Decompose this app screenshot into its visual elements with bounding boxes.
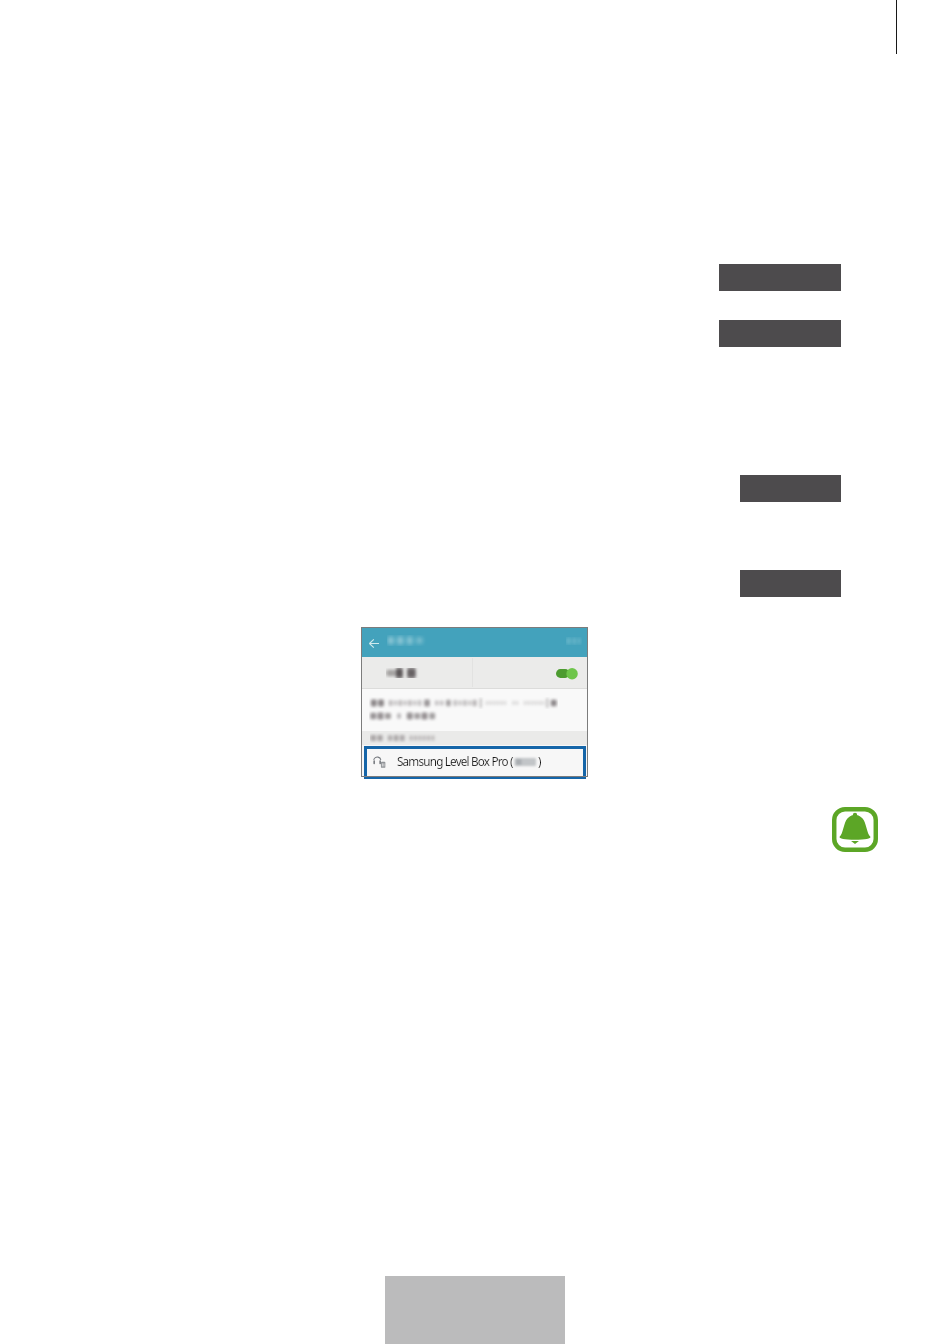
button[interactable]: Back bbox=[366, 635, 382, 651]
other: Bluetooth headset bbox=[373, 756, 386, 769]
button[interactable]: Toggle on bbox=[554, 665, 580, 681]
button[interactable]: Toggle on bbox=[361, 657, 588, 688]
button[interactable]: Notifications bbox=[832, 807, 878, 852]
button[interactable]: Bluetooth headset bbox=[364, 746, 586, 779]
staticText: Samsung Level Box Pro ( bbox=[397, 753, 513, 769]
staticText: ) bbox=[538, 753, 542, 769]
